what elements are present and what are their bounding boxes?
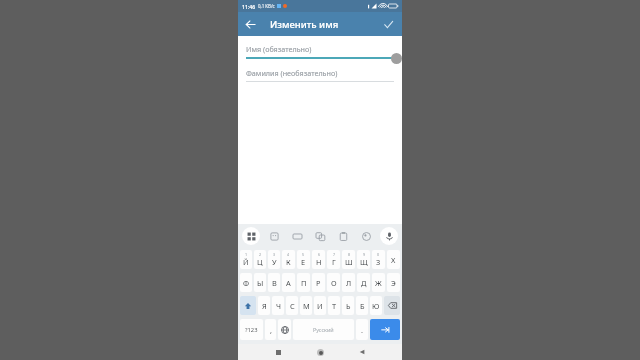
button[interactable]: Shift	[240, 296, 256, 315]
button[interactable]: Б	[356, 296, 368, 315]
staticText: 4	[287, 252, 290, 257]
button[interactable]: Стикеры	[265, 227, 283, 245]
button[interactable]: М	[300, 296, 312, 315]
button[interactable]: С	[286, 296, 298, 315]
button[interactable]: Ь	[342, 296, 354, 315]
button[interactable]: Э	[387, 273, 400, 292]
staticText: 7	[333, 252, 336, 257]
staticText: Н	[316, 257, 322, 267]
staticText: Х	[391, 255, 396, 265]
staticText: 3	[273, 252, 276, 257]
staticText: Ф	[243, 278, 250, 288]
button[interactable]: Л	[342, 273, 355, 292]
button[interactable]: Недавние	[261, 344, 295, 360]
button[interactable]: Д	[357, 273, 370, 292]
staticText: 1	[245, 252, 248, 257]
button[interactable]: И	[314, 296, 326, 315]
button[interactable]: Меню	[242, 227, 260, 245]
staticText: М	[303, 301, 310, 311]
button[interactable]: 7	[327, 250, 340, 269]
button[interactable]: Ф	[240, 273, 252, 292]
button[interactable]: Назад	[238, 12, 262, 36]
staticText: 6	[318, 252, 321, 257]
staticText: Я	[262, 301, 267, 311]
staticText: В	[272, 278, 277, 288]
button[interactable]: ,	[265, 319, 276, 340]
button[interactable]: 0	[372, 250, 385, 269]
button[interactable]: Главная	[303, 344, 337, 360]
staticText: Ш	[345, 257, 353, 267]
button[interactable]: Фамилия (необязательно)	[246, 68, 394, 82]
staticText: И	[317, 301, 323, 311]
staticText: С	[290, 301, 295, 311]
staticText: 11:46	[242, 3, 256, 10]
staticText: Ч	[276, 301, 281, 311]
staticText: ,	[270, 325, 272, 335]
button[interactable]: Ч	[272, 296, 284, 315]
button[interactable]: 2	[254, 250, 266, 269]
staticText: З	[376, 257, 381, 267]
button[interactable]: ?123	[240, 319, 263, 340]
button[interactable]: Назад	[345, 344, 379, 360]
staticText: А	[286, 278, 291, 288]
button[interactable]: 5	[297, 250, 310, 269]
button[interactable]: В	[268, 273, 280, 292]
staticText: Ь	[346, 301, 351, 311]
button[interactable]: 9	[357, 250, 370, 269]
button[interactable]: 3	[268, 250, 280, 269]
staticText: Ц	[257, 257, 263, 267]
staticText: 9	[363, 252, 366, 257]
staticText: Э	[391, 278, 396, 288]
button[interactable]: А	[282, 273, 295, 292]
button[interactable]: 4	[282, 250, 295, 269]
button[interactable]: Ы	[254, 273, 266, 292]
button[interactable]: Сменить язык	[278, 319, 291, 340]
button[interactable]: Enter	[370, 319, 400, 340]
staticText: Й	[243, 257, 249, 267]
staticText: Щ	[360, 257, 368, 267]
button[interactable]: .	[356, 319, 368, 340]
staticText: Д	[361, 278, 367, 288]
button[interactable]: Сохранить	[376, 12, 400, 36]
staticText: О	[331, 278, 337, 288]
staticText: Л	[346, 278, 352, 288]
staticText: .	[361, 325, 363, 335]
button[interactable]: Имя (обязательно)	[246, 44, 394, 59]
button[interactable]: Ж	[372, 273, 385, 292]
button[interactable]: Русский	[293, 319, 354, 340]
staticText: Е	[301, 257, 306, 267]
staticText: Русский	[313, 326, 334, 333]
button[interactable]: Настройки	[357, 227, 375, 245]
staticText: К	[286, 257, 291, 267]
button[interactable]: 6	[312, 250, 325, 269]
staticText: Т	[332, 301, 337, 311]
staticText: П	[301, 278, 307, 288]
staticText: ?123	[245, 326, 258, 334]
button[interactable]: Я	[258, 296, 270, 315]
button[interactable]: Перевод	[311, 227, 329, 245]
button[interactable]: Х	[387, 250, 400, 269]
button[interactable]: Т	[328, 296, 340, 315]
button[interactable]: Буфер обмена	[334, 227, 352, 245]
staticText: 2	[259, 252, 262, 257]
staticText: Ю	[372, 301, 380, 311]
staticText: Имя (обязательно)	[246, 44, 312, 54]
button[interactable]: Р	[312, 273, 325, 292]
staticText: 0	[377, 252, 380, 257]
staticText: Б	[360, 301, 365, 311]
button[interactable]: Backspace	[384, 296, 400, 315]
button[interactable]: Микрофон	[380, 227, 398, 245]
button[interactable]: П	[297, 273, 310, 292]
button[interactable]: 8	[342, 250, 355, 269]
button[interactable]: 1	[240, 250, 252, 269]
staticText: Ж	[375, 278, 382, 288]
button[interactable]: GIF	[288, 227, 306, 245]
staticText: У	[272, 257, 277, 267]
staticText: Г	[332, 257, 336, 267]
button[interactable]: О	[327, 273, 340, 292]
staticText: Ы	[257, 278, 264, 288]
button[interactable]: Ю	[370, 296, 382, 315]
staticText: Фамилия (необязательно)	[246, 68, 338, 78]
staticText: Изменить имя	[270, 18, 339, 31]
staticText: 5	[302, 252, 305, 257]
